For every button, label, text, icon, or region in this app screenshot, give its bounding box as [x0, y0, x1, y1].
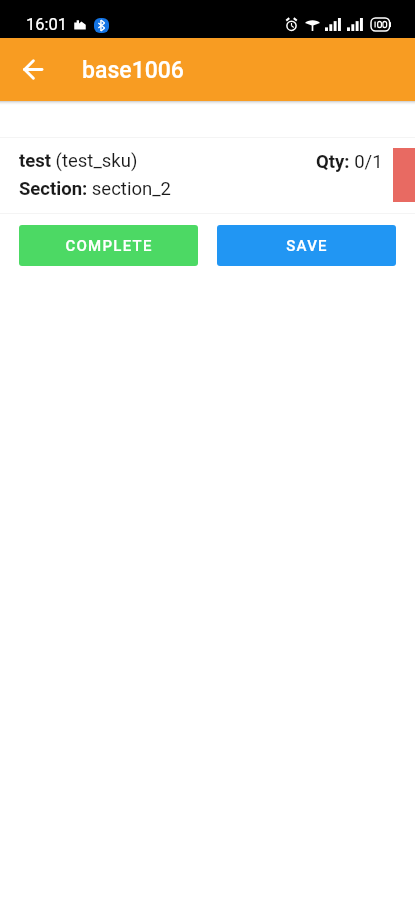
staticText: test (test_sku) — [19, 150, 138, 172]
button[interactable]: COMPLETE — [19, 225, 198, 266]
button[interactable]: Back — [9, 46, 56, 93]
staticText: base1006 — [82, 57, 184, 84]
button[interactable]: test (test_sku) — [0, 138, 415, 213]
staticText: COMPLETE — [65, 237, 153, 255]
staticText: Qty: 0/1 — [316, 151, 383, 173]
staticText: 16:01 — [26, 15, 68, 34]
button[interactable]: SAVE — [217, 225, 396, 266]
staticText: SAVE — [286, 237, 328, 255]
staticText: Section: section_2 — [19, 178, 171, 200]
